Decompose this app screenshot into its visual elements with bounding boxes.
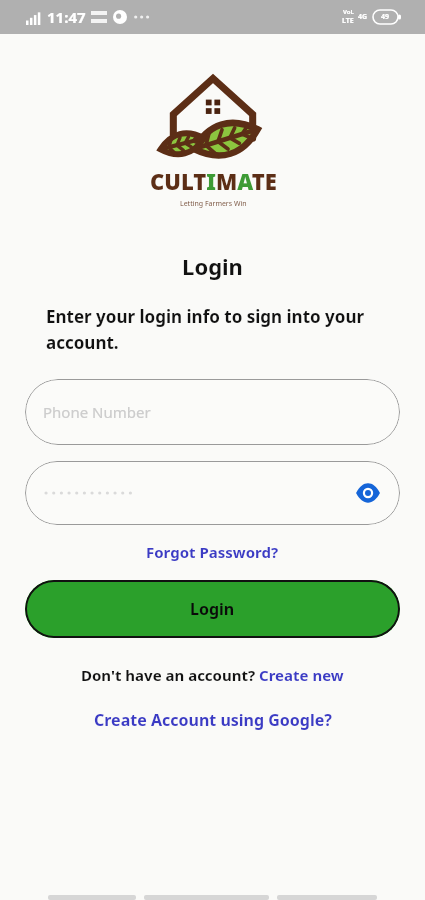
button[interactable]: Don't have an account? Create new <box>75 662 350 688</box>
staticText: Forgot Password? <box>146 542 279 562</box>
staticText: Login <box>0 251 425 281</box>
staticText: VoL <box>343 8 354 16</box>
staticText: CULTIMATE <box>150 166 277 196</box>
staticText: LTE <box>342 16 354 26</box>
button[interactable]: Forgot Password? <box>142 538 283 566</box>
staticText: 4G <box>358 12 368 22</box>
button[interactable]: Phone Number <box>25 379 400 445</box>
staticText: Don't have an account? Create new <box>81 665 344 685</box>
staticText: Create Account using Google? <box>94 709 332 731</box>
staticText: 49 <box>381 12 390 22</box>
staticText: Phone Number <box>43 402 151 422</box>
button[interactable]: Create Account using Google? <box>88 706 338 734</box>
button[interactable]: Show password <box>348 473 388 513</box>
button[interactable]: Show password <box>25 461 400 525</box>
staticText: 11:47 <box>47 7 86 27</box>
button[interactable]: Login <box>25 580 400 638</box>
staticText: Login <box>190 598 235 620</box>
staticText: Letting Farmers Win <box>180 199 247 209</box>
staticText: Enter your login info to sign into your … <box>46 305 385 354</box>
